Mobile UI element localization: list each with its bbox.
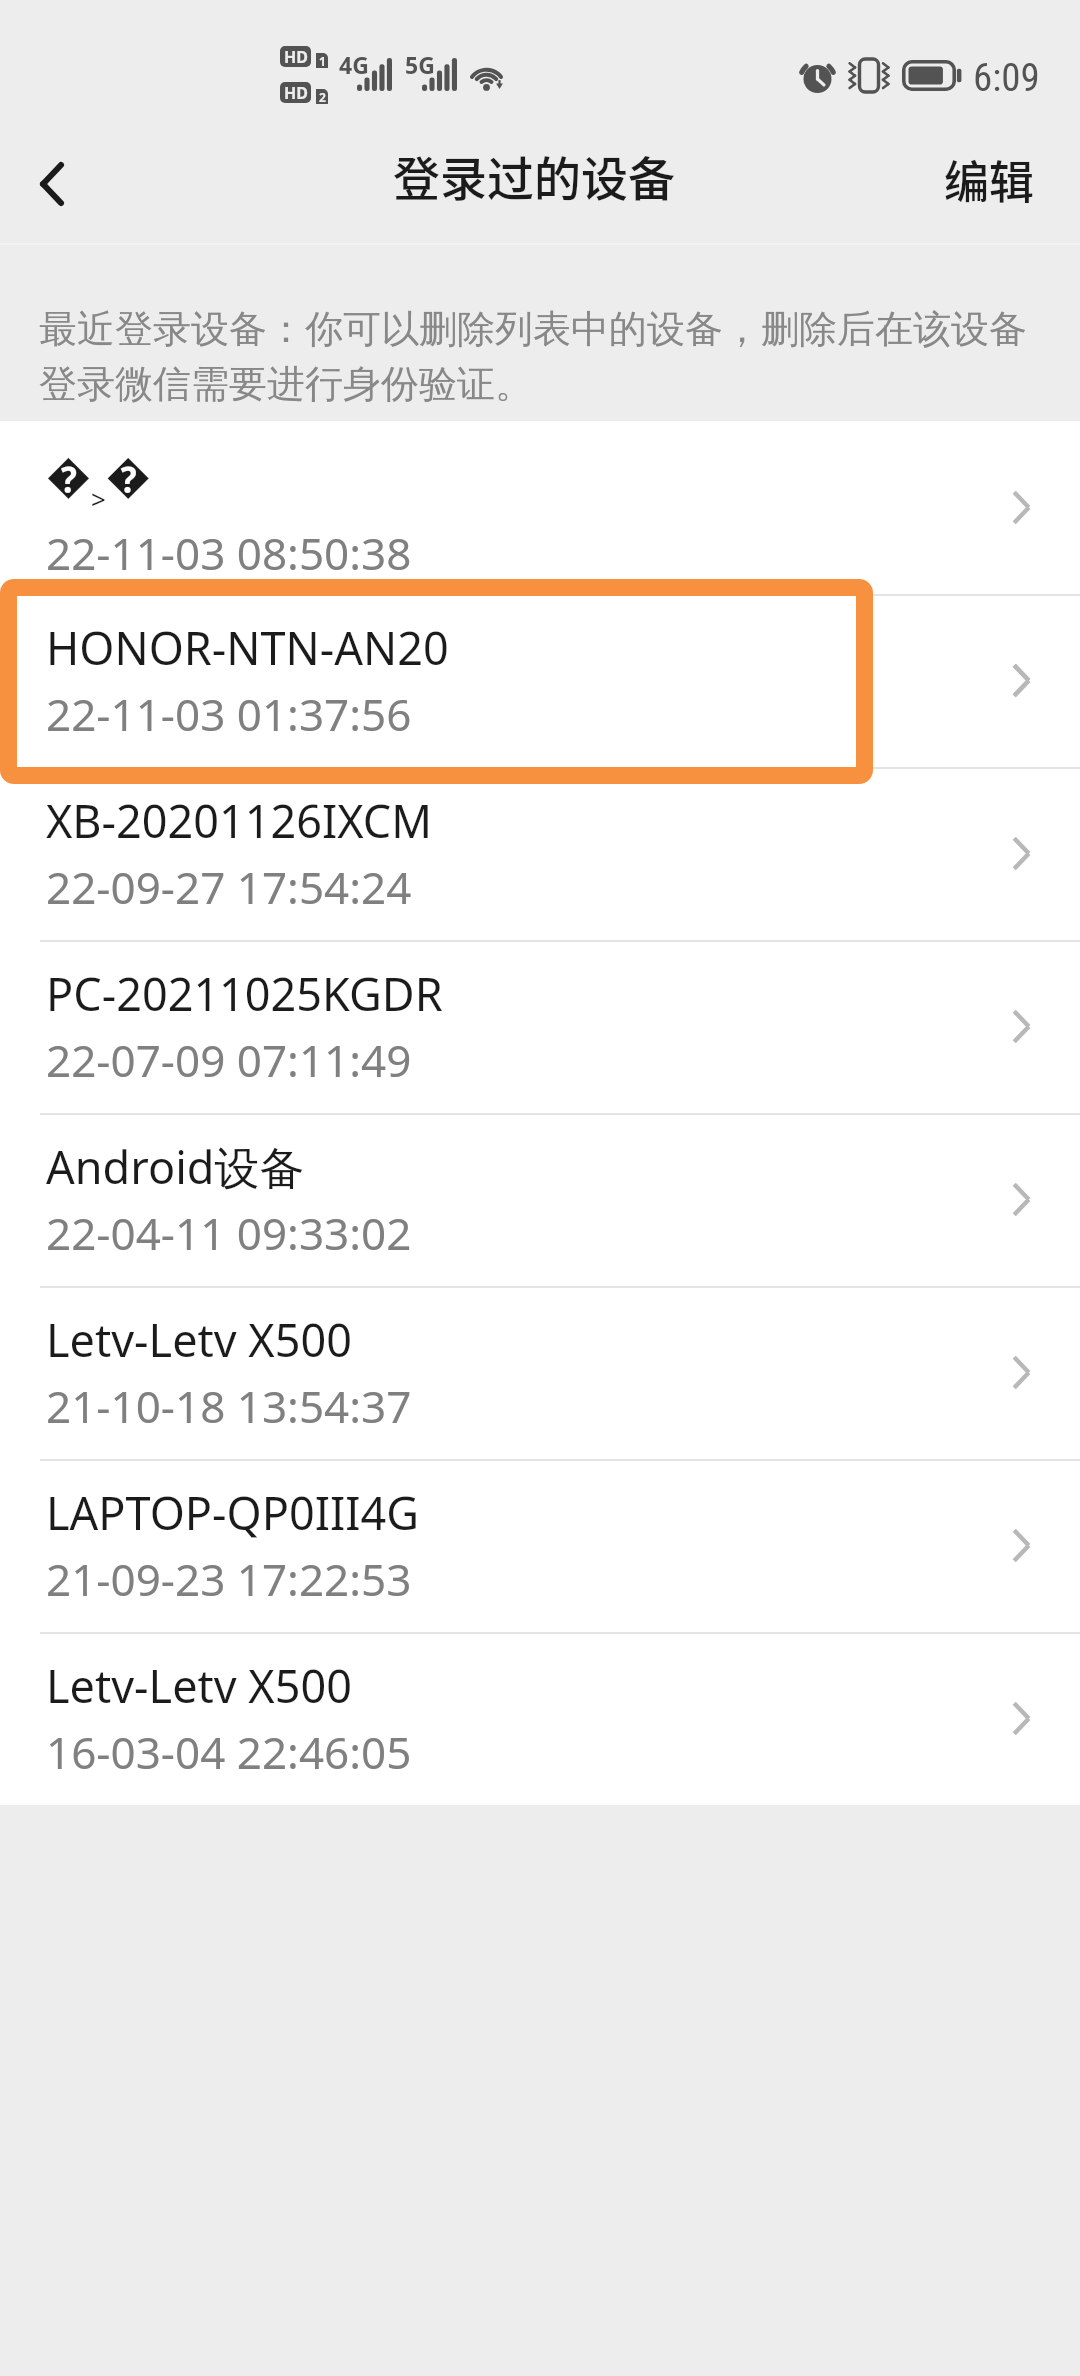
staticText: 22-04-11 09:33:02 <box>46 1203 412 1263</box>
staticText: 2 <box>319 89 326 104</box>
staticText: PC-20211025KGDR <box>46 963 443 1024</box>
staticText: Android设备 <box>46 1136 305 1197</box>
button[interactable]: LAPTOP-QP0III4G <box>0 1459 1080 1632</box>
button[interactable]: Android设备 <box>0 1113 1080 1286</box>
button[interactable]: 编辑 <box>904 123 1080 244</box>
button[interactable]: XB-20201126IXCM <box>0 767 1080 940</box>
button[interactable]: Back <box>0 123 104 244</box>
staticText: 16-03-04 22:46:05 <box>46 1722 412 1782</box>
staticText: 22-11-03 01:37:56 <box>46 684 412 744</box>
staticText: HD <box>284 46 308 67</box>
staticText: 21-09-23 17:22:53 <box>46 1549 412 1609</box>
staticText: 22-07-09 07:11:49 <box>46 1030 412 1090</box>
staticText: 编辑 <box>944 147 1035 212</box>
button[interactable]: Letv-Letv X500 <box>0 1632 1080 1805</box>
staticText: 5G <box>405 49 435 80</box>
staticText: 22-11-03 01:37:56 <box>46 684 412 744</box>
button[interactable]: PC-20211025KGDR <box>0 940 1080 1113</box>
staticText: 登录过的设备 <box>393 141 675 209</box>
staticText: HONOR-NTN-AN20 <box>46 617 449 678</box>
staticText: 1 <box>319 53 326 68</box>
staticText: 6:09 <box>973 55 1040 101</box>
button[interactable]: �>� <box>0 421 1080 594</box>
staticText: 4G <box>339 49 369 80</box>
staticText: 最近登录设备：你可以删除列表中的设备，删除后在该设备登录微信需要进行身份验证。 <box>39 301 1039 411</box>
button[interactable]: Letv-Letv X500 <box>0 1286 1080 1459</box>
staticText: 22-09-27 17:54:24 <box>46 857 412 917</box>
staticText: Letv-Letv X500 <box>46 1309 352 1370</box>
staticText: 22-11-03 08:50:38 <box>46 523 412 583</box>
staticText: XB-20201126IXCM <box>46 790 433 851</box>
staticText: 21-10-18 13:54:37 <box>46 1376 412 1436</box>
staticText: �>� <box>46 444 151 517</box>
staticText: LAPTOP-QP0III4G <box>46 1482 419 1543</box>
staticText: HONOR-NTN-AN20 <box>46 617 449 678</box>
staticText: HD <box>284 82 308 103</box>
staticText: Letv-Letv X500 <box>46 1655 352 1716</box>
button[interactable]: HONOR-NTN-AN20 <box>0 594 1080 767</box>
